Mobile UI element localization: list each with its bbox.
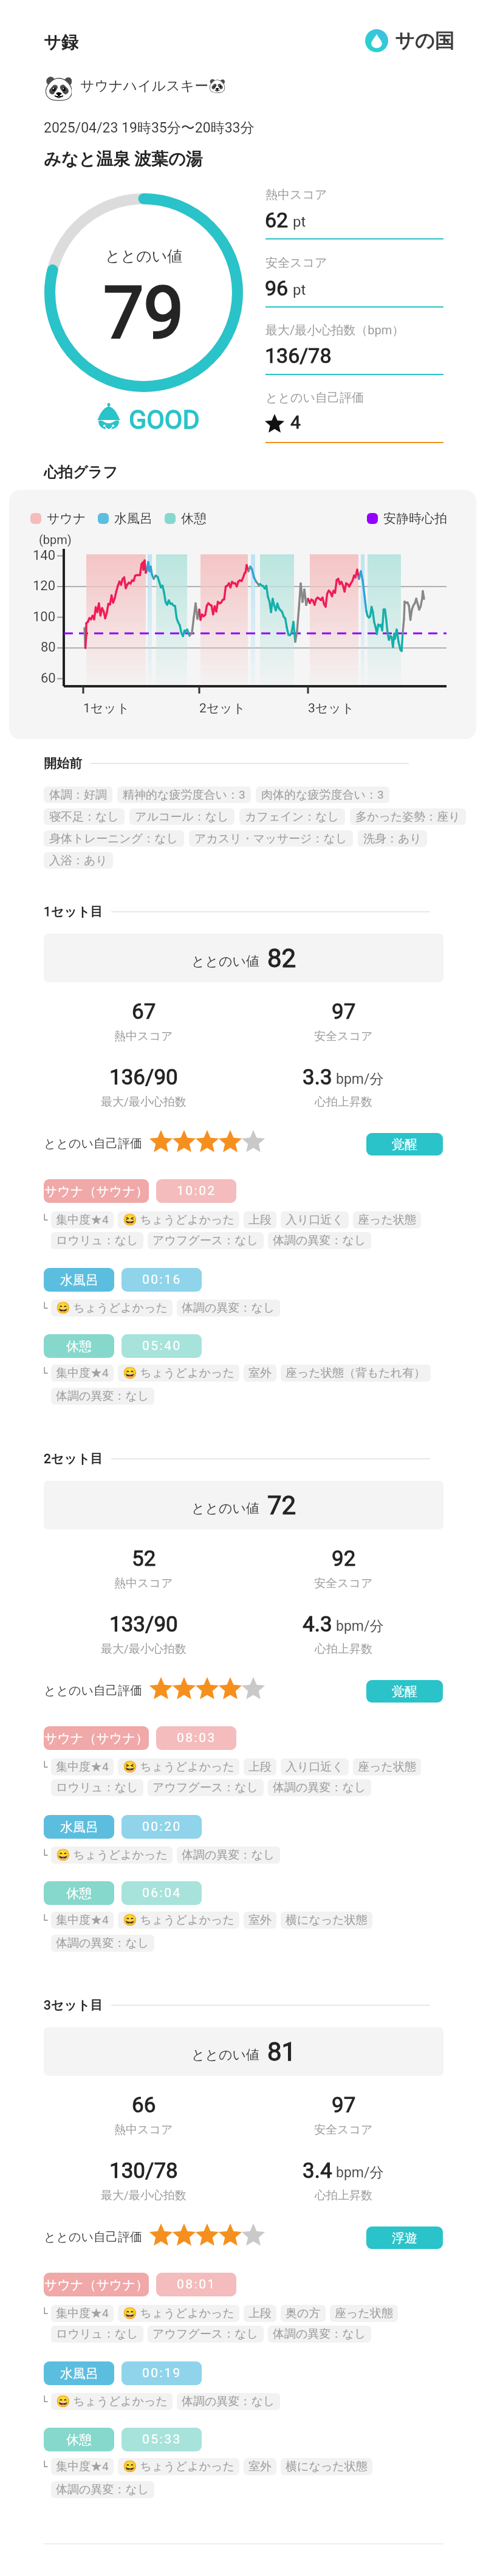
staticText: 体調の異変：なし	[182, 1301, 275, 1315]
staticText: 横になった状態	[286, 1913, 368, 1927]
staticText: 開始前	[44, 756, 82, 771]
staticText: カフェイン：なし	[245, 810, 340, 824]
button[interactable]: 休憩	[44, 1334, 114, 1358]
button[interactable]: サウナ（サウナ）	[44, 1726, 149, 1750]
staticText: 00:16	[142, 1272, 182, 1287]
staticText: 安全スコア	[314, 2123, 373, 2137]
staticText: ととのい自己評価	[44, 2230, 142, 2245]
button[interactable]: サウナ（サウナ）	[44, 2273, 149, 2296]
staticText: 😆 ちょうどよかった	[123, 1760, 234, 1774]
staticText: アウフグース：なし	[152, 1233, 259, 1248]
button[interactable]: 休憩	[44, 2428, 114, 2451]
staticText: アカスリ・マッサージ：なし	[194, 832, 347, 846]
button[interactable]: サウナ（サウナ）	[44, 1179, 149, 1203]
button[interactable]: 休憩	[44, 1881, 114, 1905]
staticText: 水風呂	[114, 511, 152, 526]
staticText: 00:19	[142, 2366, 182, 2381]
staticText: 熱中スコア	[114, 1029, 173, 1044]
staticText: サウナ（サウナ）	[44, 2277, 148, 2293]
staticText: 最大/最小心拍数	[101, 1095, 187, 1109]
staticText: 100	[33, 609, 56, 625]
button[interactable]: 水風呂	[44, 1815, 114, 1839]
staticText: アウフグース：なし	[152, 2327, 259, 2341]
staticText: 座った状態（背もたれ有）	[286, 1366, 426, 1380]
button[interactable]: ととのい値	[44, 1481, 443, 1529]
staticText: 室外	[248, 1913, 272, 1927]
staticText: サ録	[44, 32, 78, 53]
staticText: ととのい自己評価	[44, 1683, 142, 1698]
staticText: 室外	[248, 1366, 272, 1380]
staticText: 😄 ちょうどよかった	[123, 1913, 234, 1927]
staticText: ととのい値	[191, 1500, 260, 1517]
button[interactable]: 浮遊	[366, 2226, 443, 2249]
staticText: 10:02	[177, 1183, 216, 1199]
staticText: 1セット	[83, 700, 130, 716]
button[interactable]: 覚醒	[366, 1680, 443, 1703]
staticText: 熱中スコア	[265, 187, 327, 202]
staticText: 心拍上昇数	[315, 2188, 372, 2203]
staticText: 😄 ちょうどよかった	[56, 2394, 168, 2409]
staticText: 2025/04/23 19時35分〜20時33分	[44, 119, 255, 137]
staticText: └	[41, 2395, 48, 2408]
button[interactable]: ととのい値	[44, 2027, 443, 2076]
staticText: └	[41, 1302, 48, 1314]
staticText: 79	[103, 272, 184, 356]
button[interactable]: ととのい値	[44, 934, 443, 982]
staticText: 60	[41, 670, 56, 686]
staticText: 休憩	[66, 1338, 92, 1354]
staticText: ととのい自己評価	[265, 390, 364, 405]
staticText: 休憩	[181, 511, 207, 526]
staticText: ととのい自己評価	[44, 1136, 142, 1151]
staticText: 最大/最小心拍数	[101, 1642, 187, 1656]
staticText: 3.4	[303, 2158, 332, 2183]
staticText: ロウリュ：なし	[56, 1780, 139, 1795]
staticText: 😄 ちょうどよかった	[123, 1366, 234, 1380]
button[interactable]: 覚醒	[366, 1133, 443, 1155]
staticText: 😄 ちょうどよかった	[123, 2459, 234, 2474]
staticText: 体調の異変：なし	[273, 1233, 366, 1248]
staticText: 熱中スコア	[114, 1576, 173, 1591]
staticText: 4.3	[303, 1612, 332, 1637]
staticText: bpm/分	[336, 1070, 384, 1088]
button[interactable]: 水風呂	[44, 2361, 114, 2385]
staticText: 62	[265, 208, 289, 232]
staticText: 精神的な疲労度合い：3	[123, 788, 245, 802]
staticText: 3セット目	[44, 1997, 103, 2013]
staticText: 🐼	[44, 74, 72, 102]
staticText: 08:01	[177, 2277, 216, 2292]
staticText: 集中度★4	[56, 1213, 109, 1227]
staticText: 136/90	[109, 1065, 178, 1090]
staticText: GOOD	[129, 404, 200, 435]
staticText: 最大/最小心拍数（bpm）	[265, 323, 405, 338]
staticText: 05:40	[142, 1338, 182, 1354]
staticText: ロウリュ：なし	[56, 2327, 139, 2341]
staticText: みなと温泉 波葉の湯	[44, 148, 203, 170]
staticText: 1セット目	[44, 904, 103, 920]
staticText: 身体トレーニング：なし	[49, 832, 179, 846]
staticText: 97	[332, 999, 356, 1024]
staticText: 00:20	[142, 1819, 182, 1834]
staticText: 97	[332, 2093, 356, 2118]
staticText: 休憩	[66, 2432, 92, 2448]
staticText: 室外	[248, 2459, 272, 2474]
staticText: 熱中スコア	[114, 2123, 173, 2137]
staticText: 😄 ちょうどよかった	[56, 1301, 168, 1315]
button[interactable]: サの国	[365, 29, 454, 53]
staticText: 集中度★4	[56, 1760, 109, 1774]
staticText: 集中度★4	[56, 1366, 109, 1380]
staticText: 05:33	[142, 2432, 182, 2447]
staticText: 82	[267, 943, 296, 973]
staticText: サウナハイルスキー🐼	[80, 77, 226, 95]
staticText: 130/78	[109, 2158, 178, 2183]
staticText: 4	[290, 412, 301, 433]
staticText: 寝不足：なし	[49, 810, 119, 824]
button[interactable]: 水風呂	[44, 1268, 114, 1292]
staticText: 心拍上昇数	[315, 1095, 372, 1109]
staticText: 2セット	[199, 700, 246, 716]
staticText: 入り口近く	[286, 1760, 344, 1774]
staticText: 体調の異変：なし	[273, 2327, 366, 2341]
staticText: 体調の異変：なし	[182, 2394, 275, 2409]
staticText: 覚醒	[392, 1137, 417, 1152]
staticText: サウナ（サウナ）	[44, 1731, 148, 1746]
staticText: 安全スコア	[265, 255, 327, 270]
